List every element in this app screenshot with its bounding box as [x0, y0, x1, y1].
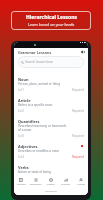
- button[interactable]: Article: [14, 98, 88, 119]
- staticText: Hierarchical Lessons: [26, 14, 77, 21]
- button[interactable]: Vocabulary: [28, 176, 43, 187]
- staticText: Required: [72, 134, 84, 138]
- staticText: Required: [72, 176, 84, 180]
- staticText: Describes how many or how much: [18, 124, 67, 128]
- staticText: Lessons: [17, 182, 26, 185]
- button[interactable]: Sound: [80, 49, 86, 55]
- button[interactable]: Practice: [58, 176, 73, 187]
- staticText: Refers to a specific noun: [18, 103, 53, 107]
- staticText: Required: [72, 155, 84, 159]
- staticText: Person, place, animal or thing: [18, 82, 61, 86]
- button[interactable]: Verbs: [14, 165, 88, 186]
- staticText: Action or state of being: [18, 170, 51, 174]
- staticText: Verbs: [18, 165, 29, 170]
- staticText: Practice: [61, 182, 70, 185]
- staticText: Vocabulary: [29, 182, 42, 185]
- staticText: Noun: [18, 77, 29, 82]
- staticText: Quantifiers: [18, 119, 40, 124]
- staticText: Required: [72, 88, 84, 92]
- button[interactable]: Hierarchical Lessons: [11, 11, 91, 30]
- button[interactable]: Noun: [14, 77, 88, 98]
- staticText: Lvl 1: [18, 88, 24, 92]
- staticText: Lvl 3: [18, 134, 24, 138]
- button[interactable]: Quantifiers: [14, 119, 88, 144]
- button[interactable]: Search lesson here: [18, 56, 84, 68]
- staticText: Lvl 5: [18, 176, 24, 180]
- button[interactable]: Culture: [43, 176, 58, 187]
- button[interactable]: Adjectives: [14, 144, 88, 165]
- staticText: Grammar Lessons: [18, 50, 52, 55]
- staticText: Adjectives: [18, 144, 38, 149]
- staticText: Article: [18, 98, 31, 103]
- button[interactable]: Profile: [73, 176, 88, 187]
- staticText: Lvl 4: [18, 155, 24, 159]
- staticText: Search lesson here: [25, 60, 54, 64]
- staticText: Learn based on your levels: [28, 22, 75, 27]
- staticText: Profile: [77, 182, 85, 185]
- staticText: of a noun: [18, 128, 32, 132]
- staticText: Lvl 2: [18, 109, 24, 113]
- staticText: Describes or modifies a noun: [18, 149, 60, 153]
- staticText: Required: [72, 109, 84, 113]
- button[interactable]: Lessons: [14, 176, 28, 187]
- staticText: Culture: [46, 182, 55, 185]
